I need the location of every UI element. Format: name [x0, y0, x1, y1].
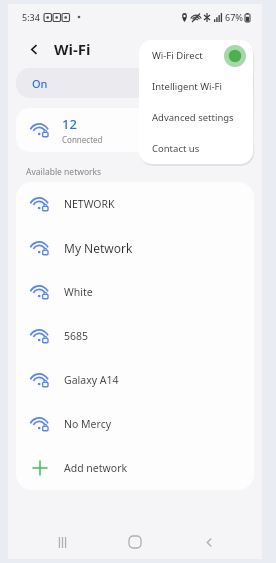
button[interactable]: Back	[189, 525, 229, 559]
staticText: Intelligent Wi-Fi	[152, 80, 222, 93]
staticText: Galaxy A14	[64, 373, 119, 387]
staticText: 5685	[64, 329, 89, 343]
button[interactable]: Contact us	[139, 133, 253, 164]
staticText: White	[64, 285, 93, 299]
staticText: Available networks	[26, 166, 102, 178]
button[interactable]: Add network	[16, 446, 254, 490]
staticText: Add network	[64, 461, 128, 475]
staticText: Advanced settings	[152, 111, 234, 124]
button[interactable]: White	[16, 270, 254, 314]
button[interactable]: No Mercy	[16, 402, 254, 446]
staticText: On	[32, 76, 48, 91]
button[interactable]: Home	[115, 525, 155, 559]
staticText: My Network	[64, 240, 133, 256]
staticText: Wi-Fi	[54, 39, 91, 59]
button[interactable]: Advanced settings	[139, 102, 253, 133]
staticText: 67%	[225, 11, 243, 23]
button[interactable]: My Network	[16, 226, 254, 270]
button[interactable]: Intelligent Wi-Fi	[139, 71, 253, 102]
staticText: No Mercy	[64, 417, 112, 431]
button[interactable]: On	[16, 68, 254, 98]
button[interactable]: Wi-Fi Direct	[139, 40, 253, 71]
staticText: NETWORK	[64, 197, 115, 211]
staticText: Contact us	[152, 142, 200, 155]
button[interactable]: Recent apps	[42, 525, 82, 559]
staticText: Wi-Fi Direct	[152, 49, 203, 62]
button[interactable]: Galaxy A14	[16, 358, 254, 402]
button[interactable]: Back	[22, 37, 46, 61]
staticText: Connected	[62, 134, 103, 145]
button[interactable]: NETWORK	[16, 182, 254, 226]
staticText: 12	[62, 115, 77, 133]
button[interactable]: 12	[16, 108, 254, 152]
staticText: 5:34	[22, 11, 40, 23]
button[interactable]: 5685	[16, 314, 254, 358]
